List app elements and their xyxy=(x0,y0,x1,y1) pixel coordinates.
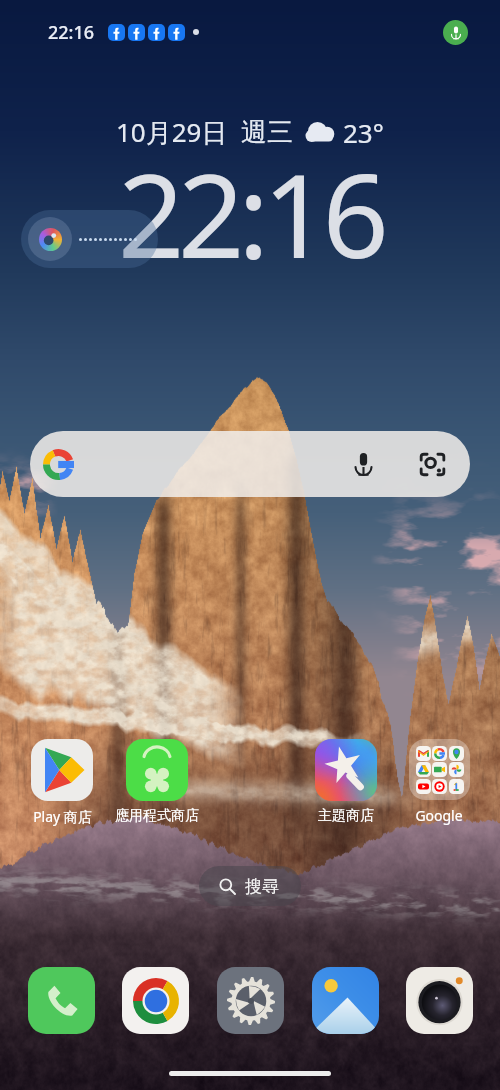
staticText: 22:16 xyxy=(118,134,383,292)
button[interactable]: 搜尋 xyxy=(199,866,301,906)
staticText: Google xyxy=(415,806,463,825)
button[interactable]: Voice search xyxy=(30,431,470,497)
button[interactable]: 主題商店 xyxy=(285,739,407,825)
button[interactable]: Chrome xyxy=(122,967,189,1034)
button[interactable]: 應用程式商店 xyxy=(96,739,218,825)
staticText: 主題商店 xyxy=(318,807,374,825)
button[interactable]: Camera xyxy=(406,967,473,1034)
staticText: 23° xyxy=(343,115,384,150)
button[interactable]: Google Lens xyxy=(413,445,451,483)
button[interactable]: Gallery xyxy=(312,967,379,1034)
staticText: Play 商店 xyxy=(33,807,92,826)
staticText: 搜尋 xyxy=(245,876,279,897)
staticText: 應用程式商店 xyxy=(115,807,199,825)
staticText: 週三 xyxy=(241,116,293,149)
staticText: 10月29日 xyxy=(116,114,228,150)
button[interactable]: Settings xyxy=(217,967,284,1034)
button[interactable]: Now Playing xyxy=(21,210,158,268)
button[interactable]: Google xyxy=(378,739,500,825)
other: Microphone in use xyxy=(443,20,468,45)
button[interactable]: Voice search xyxy=(344,445,382,483)
staticText: 22:16 xyxy=(48,20,95,45)
button[interactable]: Play 商店 xyxy=(1,739,123,826)
button[interactable]: Phone xyxy=(28,967,95,1034)
